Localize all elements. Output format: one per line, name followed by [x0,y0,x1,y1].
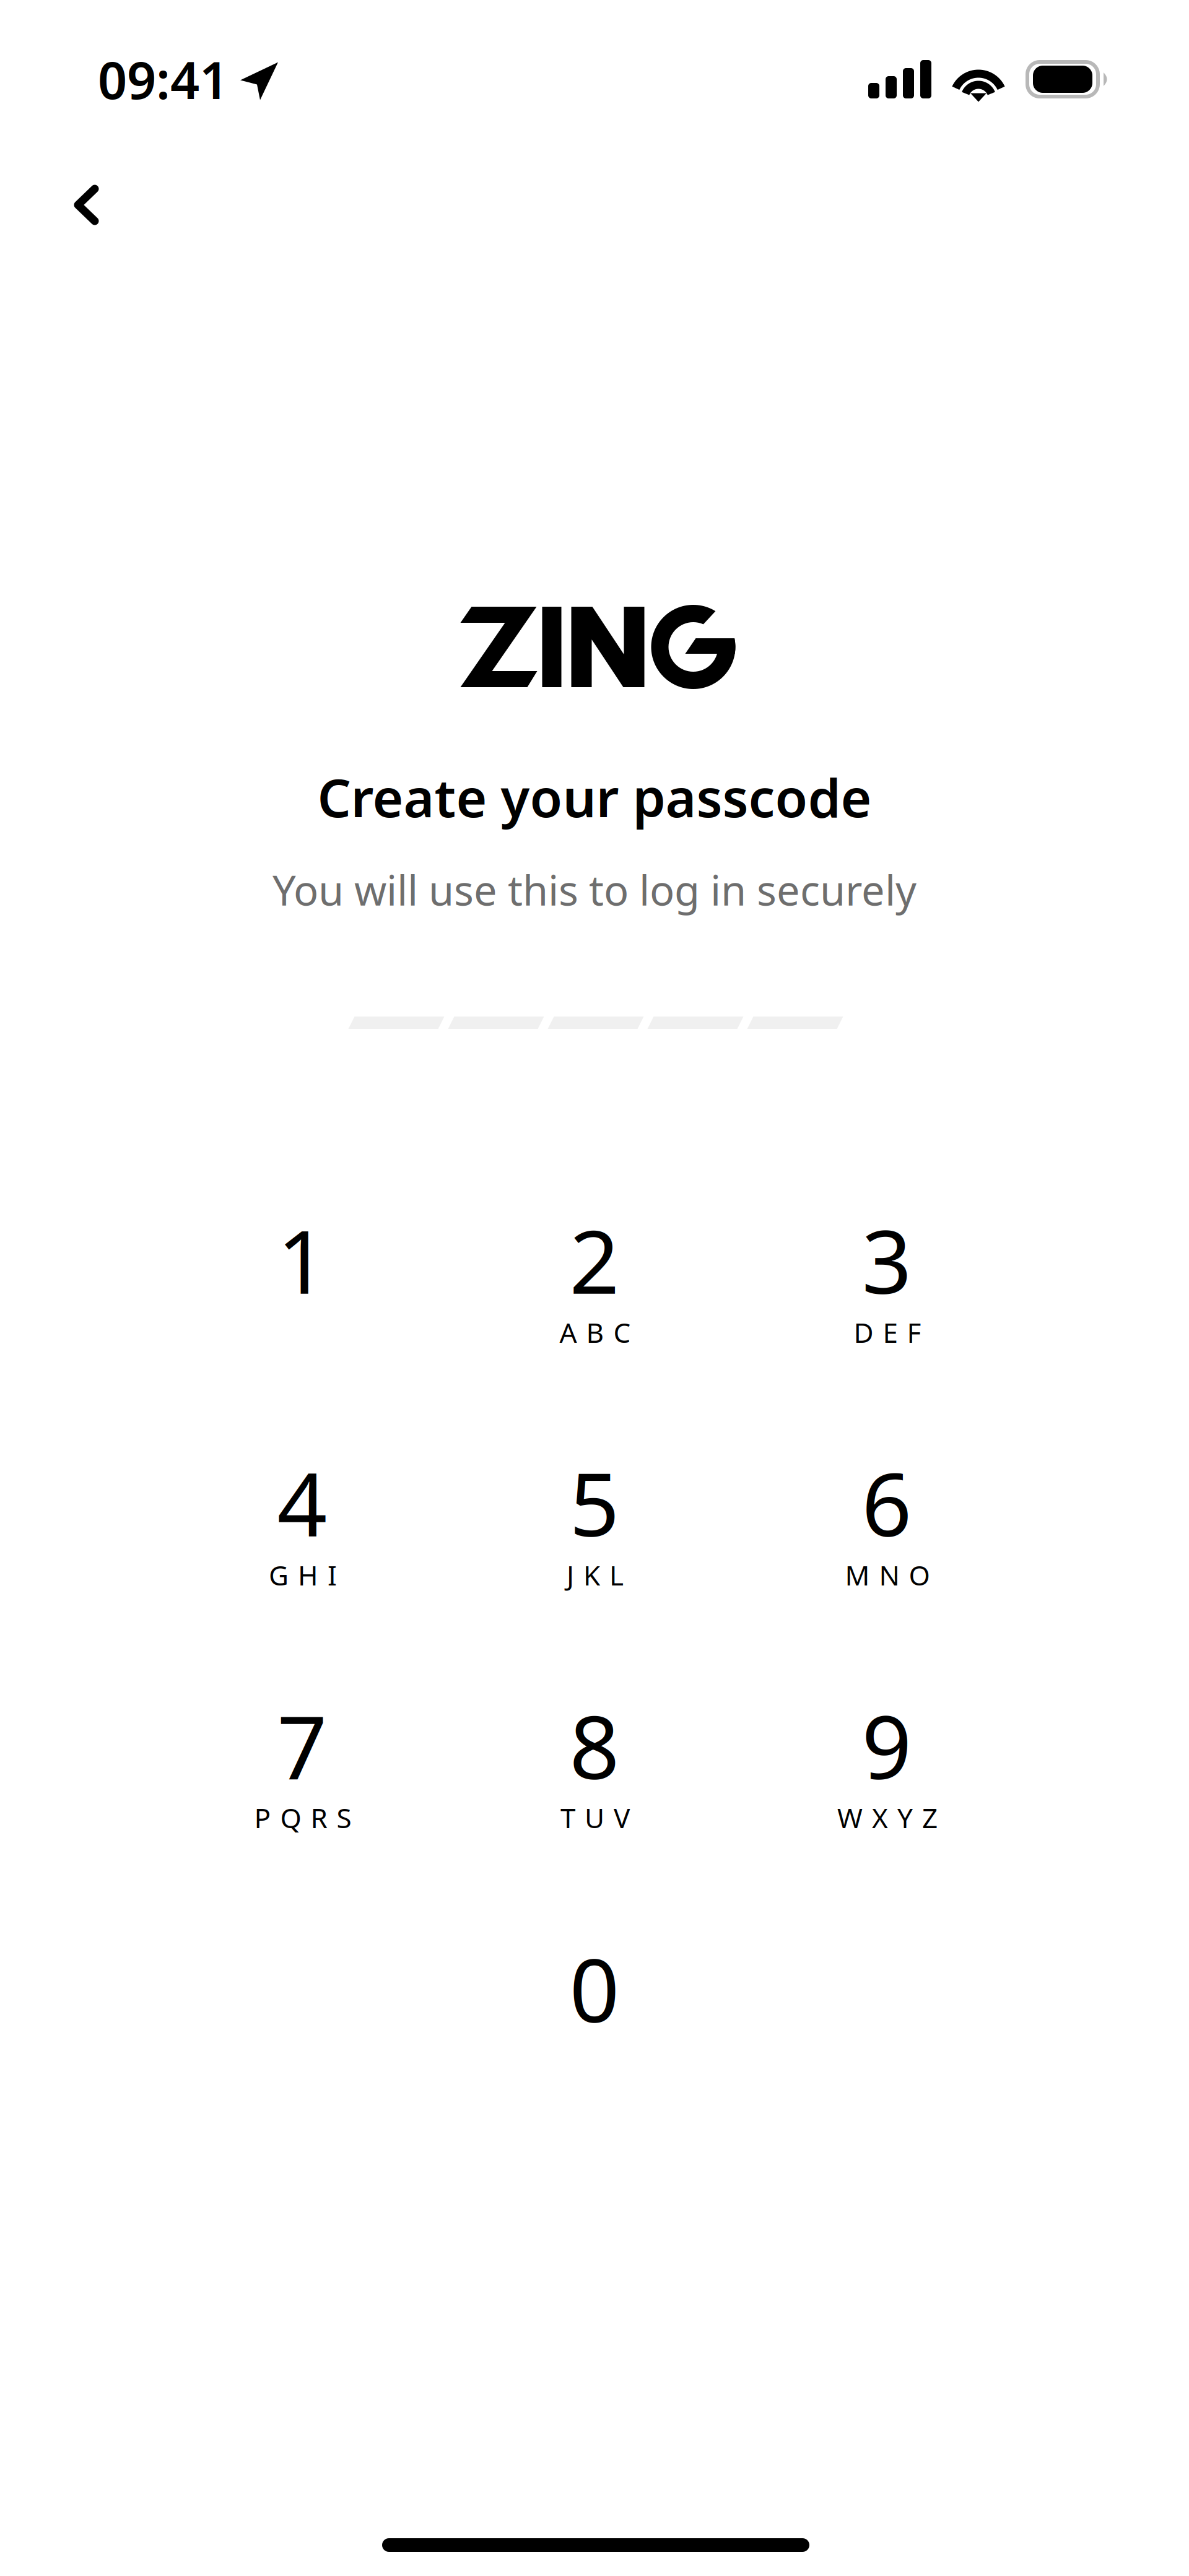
staticText: Create your passcode [317,762,872,832]
button[interactable]: 9 [769,1685,1004,1876]
staticText: 4 [277,1444,327,1561]
button[interactable]: Back [62,162,167,248]
staticText: WXYZ [837,1800,938,1836]
staticText: 5 [569,1444,620,1561]
staticText: ABC [560,1314,631,1350]
staticText: 9 [862,1687,912,1803]
button[interactable]: 1 [185,1199,420,1391]
button[interactable]: 3 [769,1199,1004,1391]
staticText: 2 [569,1202,620,1318]
staticText: 8 [569,1687,620,1803]
staticText: 09:41 [98,45,229,113]
staticText: PQRS [254,1800,351,1836]
button[interactable]: 8 [477,1685,712,1876]
staticText: You will use this to log in securely [272,862,917,917]
button[interactable]: 6 [769,1442,1004,1634]
staticText: 0 [569,1930,620,2047]
staticText: 7 [277,1687,327,1803]
button[interactable]: 0 [477,1928,712,2120]
staticText: DEF [854,1314,921,1350]
staticText: 3 [862,1202,912,1318]
button[interactable]: 7 [185,1685,420,1876]
staticText: 6 [862,1444,912,1561]
button[interactable]: 2 [477,1199,712,1391]
staticText: JKL [567,1557,624,1593]
staticText: TUV [560,1800,630,1836]
button[interactable]: 5 [477,1442,712,1634]
staticText: MNO [845,1557,930,1593]
button[interactable]: 4 [185,1442,420,1634]
staticText: 1 [277,1202,327,1318]
staticText: GHI [269,1557,337,1593]
